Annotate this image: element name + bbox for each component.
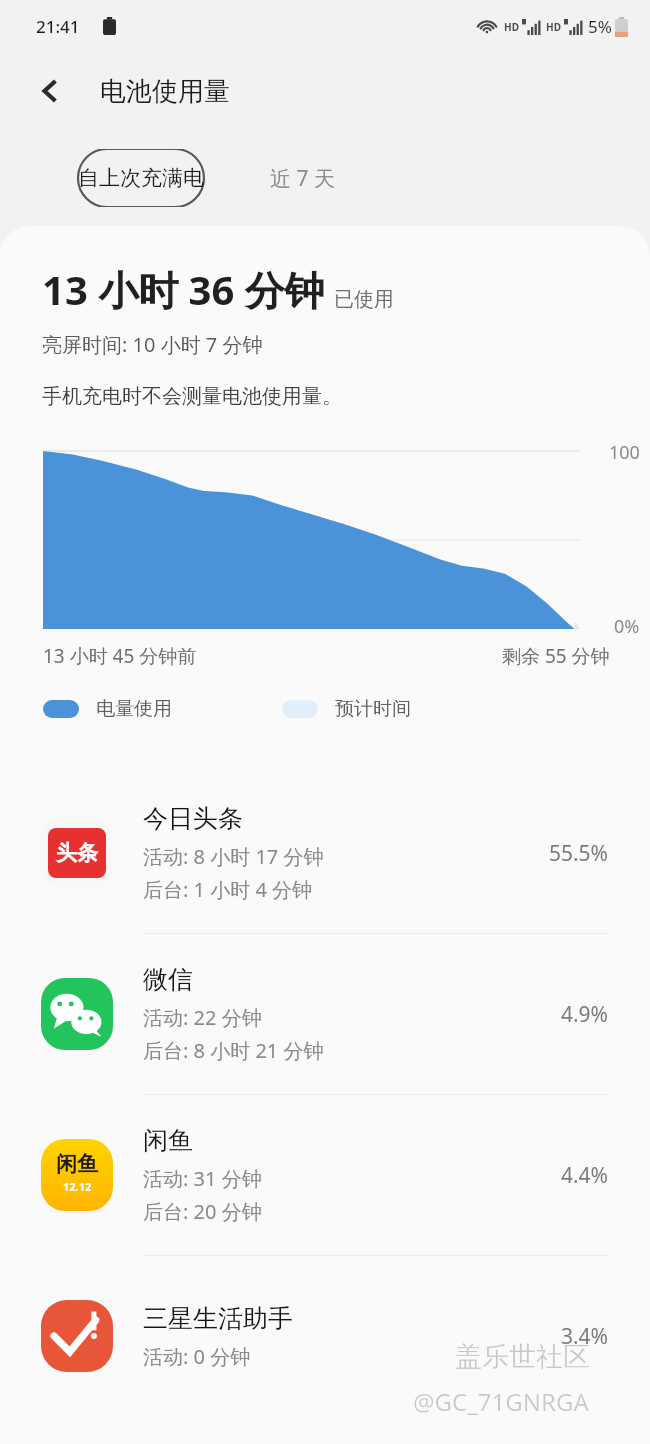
staticText: 55.5% — [548, 839, 608, 868]
staticText: 今日头条 — [143, 803, 243, 834]
button[interactable]: 三星生活助手 — [0, 1256, 650, 1416]
staticText: 5% — [588, 15, 612, 38]
staticText: 微信 — [143, 964, 193, 995]
staticText: 手机充电时不会测量电池使用量。 — [42, 384, 342, 409]
staticText: 闲鱼 — [56, 1151, 98, 1177]
staticText: 后台: 1 小时 4 分钟 — [143, 876, 313, 903]
staticText: 电量使用 — [96, 697, 172, 721]
staticText: HD — [546, 20, 561, 34]
staticText: 盖乐世社区 — [455, 1340, 590, 1374]
staticText: 4.9% — [560, 1000, 608, 1029]
button[interactable]: 微信 — [0, 934, 650, 1094]
staticText: 3.4% — [560, 1322, 608, 1351]
button[interactable]: 自上次充满电 — [44, 149, 238, 207]
staticText: 预计时间 — [335, 697, 411, 721]
staticText: 闲鱼 — [143, 1125, 193, 1156]
staticText: 13 小时 45 分钟前 — [43, 643, 197, 669]
staticText: HD — [504, 20, 519, 34]
staticText: 剩余 55 分钟 — [502, 643, 610, 669]
staticText: 100 — [609, 440, 640, 465]
staticText: 活动: 8 小时 17 分钟 — [143, 843, 324, 870]
button[interactable]: 头条 — [0, 773, 650, 933]
button[interactable]: Back — [26, 67, 74, 115]
staticText: 21:41 — [36, 15, 80, 38]
staticText: 近 7 天 — [270, 164, 335, 193]
staticText: 4.4% — [560, 1161, 608, 1190]
staticText: 12.12 — [63, 1179, 92, 1194]
staticText: @GC_71GNRGA — [413, 1385, 589, 1418]
staticText: 活动: 31 分钟 — [143, 1165, 262, 1192]
staticText: 亮屏时间: 10 小时 7 分钟 — [42, 331, 263, 358]
staticText: 自上次充满电 — [78, 165, 204, 191]
button[interactable]: 闲鱼 — [0, 1095, 650, 1255]
staticText: 0% — [614, 614, 640, 639]
staticText: 头条 — [56, 840, 98, 866]
button[interactable]: 近 7 天 — [238, 154, 367, 203]
staticText: 活动: 22 分钟 — [143, 1004, 262, 1031]
staticText: 三星生活助手 — [143, 1303, 293, 1334]
staticText: 已使用 — [334, 287, 394, 312]
staticText: 后台: 20 分钟 — [143, 1198, 262, 1225]
staticText: 活动: 0 分钟 — [143, 1343, 251, 1370]
staticText: 后台: 8 小时 21 分钟 — [143, 1037, 324, 1064]
staticText: 13 小时 36 分钟 — [42, 262, 325, 317]
staticText: 电池使用量 — [100, 75, 230, 108]
